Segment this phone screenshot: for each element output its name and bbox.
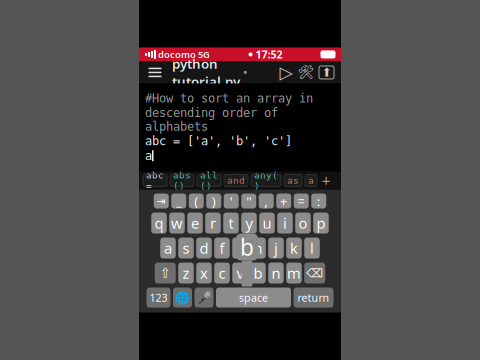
button[interactable]: o — [295, 213, 311, 234]
button[interactable]: v — [232, 263, 248, 284]
button[interactable]: k — [286, 238, 302, 259]
button[interactable]: return — [293, 288, 333, 308]
staticText: abs() — [173, 170, 191, 191]
button[interactable]: Export — [316, 66, 337, 79]
staticText: 🎤 — [196, 291, 211, 304]
staticText: 17:52 — [252, 47, 282, 62]
staticText: ⌫ — [306, 266, 323, 280]
staticText: • — [243, 64, 248, 80]
staticText: i — [283, 213, 287, 233]
button[interactable]: a — [305, 175, 317, 187]
button[interactable]: l — [304, 238, 320, 259]
button[interactable]: all() — [197, 175, 221, 187]
button[interactable]: e — [187, 213, 203, 234]
staticText: h — [253, 238, 262, 258]
staticText: docomo — [156, 48, 196, 61]
button[interactable]: r — [205, 213, 221, 234]
button[interactable]: 🌐 — [173, 288, 192, 308]
staticText: 5G — [196, 48, 210, 61]
staticText: y — [245, 213, 252, 233]
staticText: q — [154, 213, 163, 233]
staticText: z — [182, 263, 189, 283]
button[interactable]: x — [196, 263, 212, 284]
button[interactable]: : — [311, 194, 326, 209]
staticText: f — [219, 238, 224, 258]
button[interactable]: Tools — [296, 63, 316, 81]
button[interactable]: Add snippet — [320, 174, 332, 188]
button[interactable]: p — [313, 213, 329, 234]
button[interactable]: , — [259, 194, 274, 209]
staticText: s — [182, 238, 189, 258]
button[interactable]: s — [178, 238, 194, 259]
button[interactable]: n — [268, 263, 284, 284]
button[interactable]: abc = — [143, 175, 167, 187]
staticText: m — [287, 263, 301, 283]
staticText: t — [228, 213, 233, 233]
button[interactable]: _ — [171, 194, 186, 209]
staticText: : — [317, 192, 321, 210]
staticText: j — [274, 238, 278, 258]
staticText: n — [271, 263, 280, 283]
button[interactable]: any() — [251, 175, 281, 187]
button[interactable]: " — [241, 194, 256, 209]
staticText: as — [287, 175, 299, 186]
staticText: v — [236, 263, 243, 283]
button[interactable]: space — [216, 288, 291, 308]
button[interactable]: b — [250, 263, 266, 284]
button[interactable]: abs() — [170, 175, 194, 187]
button[interactable]: python tutorial.py — [167, 51, 253, 94]
staticText: b — [253, 263, 262, 283]
button[interactable]: as — [284, 175, 302, 187]
staticText: ⇧ — [160, 265, 171, 281]
button[interactable]: ' — [224, 194, 239, 209]
button[interactable]: f — [214, 238, 230, 259]
button[interactable]: ) — [206, 194, 221, 209]
button[interactable]: i — [277, 213, 293, 234]
button[interactable]: t — [223, 213, 239, 234]
staticText: and — [227, 175, 245, 186]
button[interactable]: h — [250, 238, 266, 259]
staticText: k — [290, 238, 298, 258]
button[interactable]: + — [276, 194, 291, 209]
staticText: all() — [200, 170, 218, 191]
button[interactable]: and — [224, 175, 248, 187]
button[interactable]: a — [160, 238, 176, 259]
button[interactable]: g — [232, 238, 248, 259]
staticText: p — [316, 213, 325, 233]
staticText: + — [321, 170, 330, 191]
staticText: space — [239, 290, 268, 305]
button[interactable]: y — [241, 213, 257, 234]
button[interactable]: ⇥ — [154, 194, 169, 209]
button[interactable]: Run — [276, 63, 296, 81]
button[interactable]: ( — [189, 194, 204, 209]
button[interactable]: = — [294, 194, 309, 209]
staticText: python tutorial.py — [172, 55, 240, 90]
button[interactable]: Menu — [143, 61, 167, 83]
button[interactable]: ⌫ — [304, 263, 325, 284]
staticText: ' — [230, 192, 233, 210]
button[interactable]: 🎤 — [194, 288, 213, 308]
staticText: + — [280, 192, 288, 210]
staticText: b — [240, 232, 254, 262]
button[interactable]: j — [268, 238, 284, 259]
staticText: l — [310, 238, 314, 258]
staticText: " — [246, 192, 251, 210]
button[interactable]: u — [259, 213, 275, 234]
button[interactable]: 123 — [146, 288, 170, 308]
staticText: a — [308, 175, 314, 186]
button[interactable]: c — [214, 263, 230, 284]
button[interactable]: w — [169, 213, 185, 234]
staticText: abc = — [146, 170, 164, 191]
button[interactable]: z — [178, 263, 194, 284]
staticText: 🌐 — [175, 291, 190, 304]
staticText: a — [164, 238, 172, 258]
staticText: ) — [212, 192, 216, 210]
button[interactable]: m — [286, 263, 302, 284]
staticText: descending order of alphabets — [145, 106, 278, 133]
button[interactable]: q — [151, 213, 167, 234]
staticText: ⇥ — [157, 195, 166, 207]
button[interactable]: d — [196, 238, 212, 259]
staticText: _ — [176, 193, 181, 209]
staticText: abc = ['a', 'b', 'c'] — [145, 134, 292, 148]
button[interactable]: ⇧ — [155, 263, 176, 284]
